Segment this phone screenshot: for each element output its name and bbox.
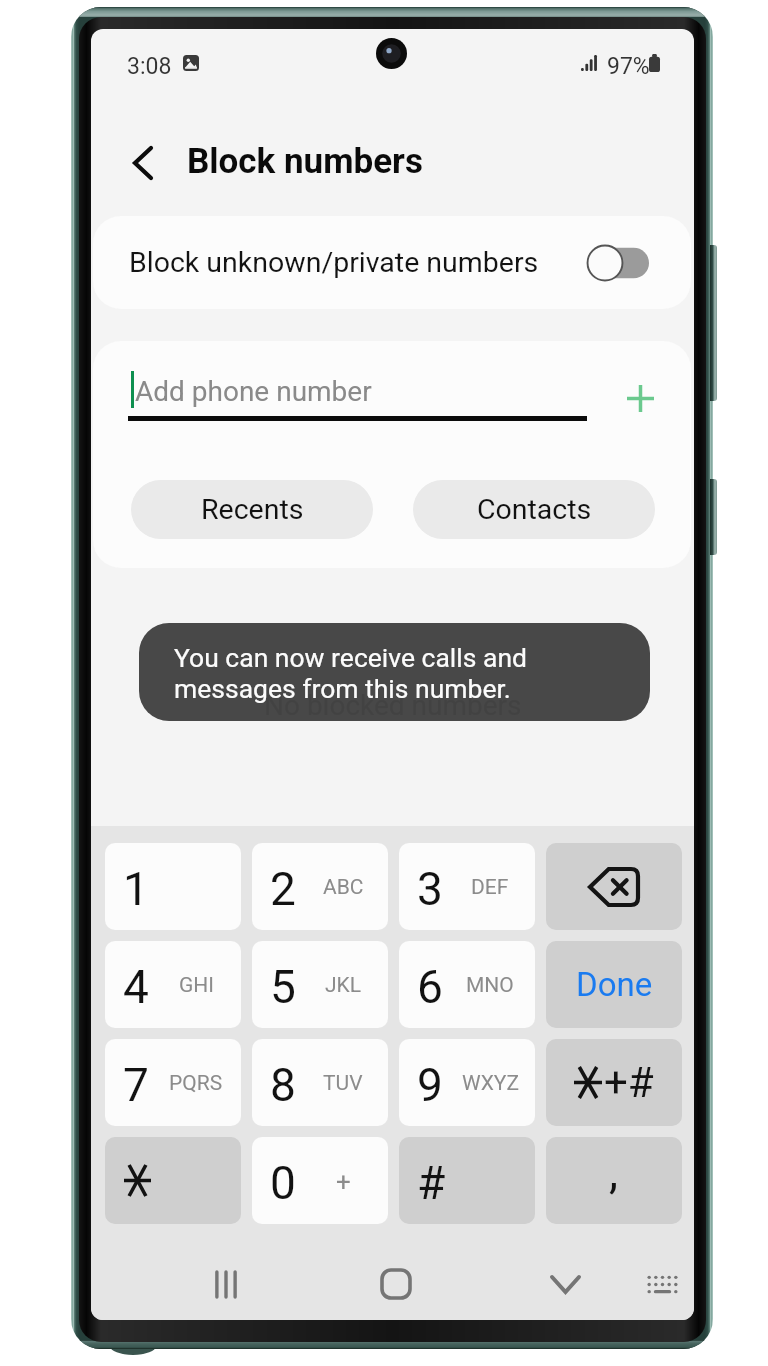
staticText: , [609,1145,619,1199]
staticText: Add phone number [135,375,372,408]
button[interactable]: 4 [105,941,241,1028]
staticText: 3:08 [127,53,172,80]
button[interactable]: Back [537,1256,593,1312]
staticText: ABC [323,875,364,900]
button[interactable]: 7 [105,1039,241,1126]
staticText: 9 [417,1058,443,1112]
staticText: Done [576,965,653,1004]
button[interactable]: +# [546,1039,682,1126]
button[interactable]: 2 [252,843,388,930]
staticText: PQRS [169,1071,223,1096]
staticText: messages from this number. [174,673,511,704]
button[interactable]: 1 [105,843,241,930]
staticText: 8 [270,1058,296,1112]
button[interactable]: Done [546,941,682,1028]
button[interactable]: Contacts [413,480,655,539]
staticText: # [417,1156,446,1210]
staticText: 3 [417,862,443,916]
staticText: TUV [323,1071,363,1096]
staticText: JKL [325,973,362,998]
button[interactable]: Home [368,1256,424,1312]
button[interactable]: , [546,1137,682,1224]
button[interactable]: Recents [131,480,373,539]
button[interactable]: Add number [616,374,664,422]
button[interactable]: 0 [252,1137,388,1224]
staticText: 7 [123,1058,149,1112]
button[interactable]: Recent apps [198,1256,254,1312]
staticText: WXYZ [462,1071,519,1096]
staticText: 0 [270,1156,296,1210]
staticText: 5 [270,960,296,1014]
button[interactable]: # [399,1137,535,1224]
staticText: No blocked numbers [264,689,522,722]
button[interactable]: Block unknown/private numbers [93,216,691,309]
staticText: 97% [607,53,650,80]
button[interactable]: Navigate up [117,137,169,189]
button[interactable]: 3 [399,843,535,930]
button[interactable] [105,1137,241,1224]
button[interactable]: 6 [399,941,535,1028]
staticText: GHI [179,973,214,998]
button[interactable]: Delete [546,843,682,930]
button[interactable]: 9 [399,1039,535,1126]
staticText: You can now receive calls and [174,642,527,673]
staticText: 4 [123,960,149,1014]
staticText: MNO [466,973,514,998]
staticText: 1 [123,862,149,916]
staticText: 2 [270,862,296,916]
staticText: Block numbers [187,141,423,182]
button[interactable]: 5 [252,941,388,1028]
staticText: 6 [417,960,443,1014]
staticText: + [336,1167,351,1197]
staticText: Contacts [477,493,592,526]
staticText: +# [604,1058,654,1107]
staticText: Recents [201,493,304,526]
other: Delete [546,843,682,930]
staticText: DEF [471,875,509,900]
button[interactable]: Keyboard [634,1256,690,1312]
button[interactable]: 8 [252,1039,388,1126]
staticText: Block unknown/private numbers [129,246,539,279]
